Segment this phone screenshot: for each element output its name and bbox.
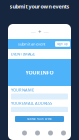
button[interactable]: SUBMIT YOUR EVENT — [15, 116, 64, 122]
staticText: EVENT IMAGE — [11, 51, 35, 57]
staticText: Sign Up — [57, 42, 68, 46]
button[interactable]: Sign Up — [55, 41, 70, 47]
staticText: YOUR NAME — [11, 87, 34, 92]
staticText: submit an event — [18, 41, 45, 47]
staticText: YOUR INFO — [25, 69, 53, 76]
staticText: submit your own events — [9, 3, 69, 10]
staticText: SUBMIT YOUR EVENT — [27, 117, 52, 121]
staticText: — ✦ — — [30, 28, 48, 35]
staticText: YOUR EMAIL ADDRESS — [11, 100, 52, 106]
